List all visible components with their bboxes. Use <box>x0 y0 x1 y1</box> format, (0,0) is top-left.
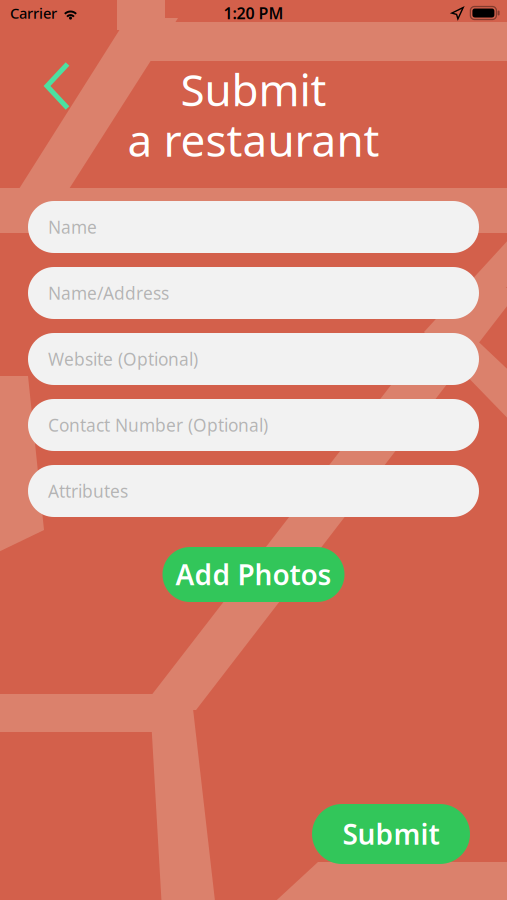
staticText: 1:20 PM <box>223 2 283 24</box>
button[interactable]: Back <box>33 50 82 122</box>
button[interactable]: Add Photos <box>162 547 344 602</box>
button[interactable]: Website (Optional) <box>28 333 479 385</box>
staticText: Submit <box>180 60 326 118</box>
button[interactable]: Contact Number (Optional) <box>28 399 479 451</box>
button[interactable]: Submit <box>312 804 470 864</box>
staticText: a restaurant <box>127 110 379 169</box>
button[interactable]: Name <box>28 201 479 253</box>
staticText: Name/Address <box>48 281 169 304</box>
staticText: Website (Optional) <box>48 347 198 370</box>
staticText: Attributes <box>48 479 128 502</box>
staticText: Contact Number (Optional) <box>48 413 268 436</box>
staticText: Carrier <box>10 3 57 23</box>
staticText: Add Photos <box>175 556 331 593</box>
staticText: Submit <box>342 815 439 853</box>
button[interactable]: Name/Address <box>28 267 479 319</box>
button[interactable]: Attributes <box>28 465 479 517</box>
staticText: Name <box>48 215 97 238</box>
